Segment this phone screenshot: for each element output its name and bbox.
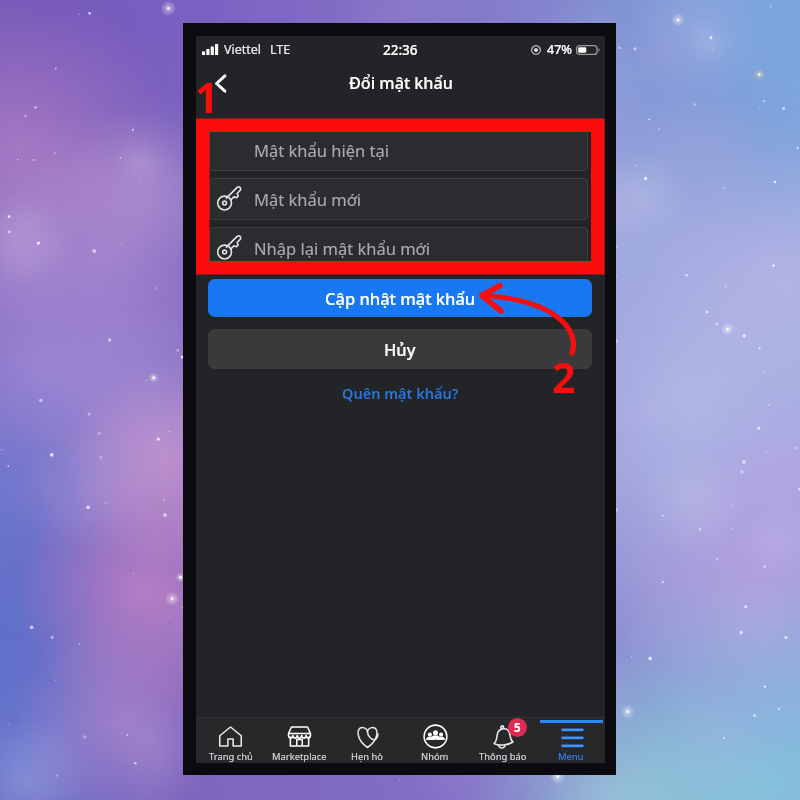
button[interactable]: Quên mật khẩu? (196, 383, 605, 403)
staticText: Marketplace (272, 750, 327, 763)
button[interactable]: Mật khẩu hiện tại (209, 129, 588, 171)
staticText: Viettel (224, 41, 262, 58)
button[interactable]: Mật khẩu mới (209, 178, 588, 220)
staticText: Cập nhật mật khẩu (325, 287, 476, 309)
button[interactable]: Nhóm (401, 717, 469, 763)
staticText: Thông báo (479, 750, 527, 763)
button[interactable]: 5 (469, 717, 537, 763)
staticText: LTE (270, 41, 291, 58)
staticText: 22:36 (383, 41, 418, 59)
button[interactable]: Hủy (208, 329, 592, 369)
staticText: 2 (552, 349, 576, 405)
staticText: Quên mật khẩu? (342, 383, 459, 403)
button[interactable]: Cập nhật mật khẩu (208, 279, 592, 317)
staticText: Đổi mật khẩu (349, 72, 453, 94)
staticText: 1 (195, 69, 219, 125)
staticText: Hẹn hò (351, 750, 383, 763)
button[interactable]: Marketplace (265, 717, 333, 763)
button[interactable]: Nhập lại mật khẩu mới (209, 227, 588, 269)
button[interactable]: Menu (537, 717, 605, 763)
button[interactable]: Trang chủ (196, 717, 265, 763)
staticText: Menu (558, 750, 584, 763)
staticText: 47% (547, 41, 572, 58)
staticText: Mật khẩu mới (254, 188, 362, 210)
staticText: Mật khẩu hiện tại (254, 139, 389, 161)
staticText: Trang chủ (209, 750, 253, 763)
staticText: Nhập lại mật khẩu mới (254, 237, 431, 259)
staticText: Nhóm (421, 750, 449, 763)
staticText: Hủy (384, 338, 416, 360)
button[interactable]: Hẹn hò (333, 717, 401, 763)
button[interactable]: Back (201, 64, 239, 102)
staticText: 5 (514, 720, 521, 736)
